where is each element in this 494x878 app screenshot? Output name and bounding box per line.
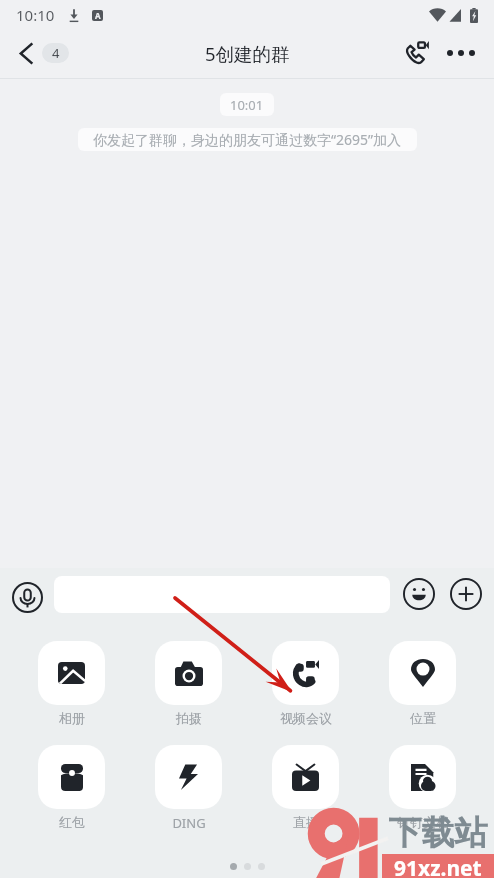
staticText: 拍摄 bbox=[176, 710, 202, 726]
button[interactable]: 钉钉文档 bbox=[389, 745, 456, 830]
button[interactable] bbox=[54, 576, 390, 613]
button[interactable]: Back, 4 unread bbox=[20, 33, 69, 73]
button[interactable]: 直播 bbox=[272, 745, 339, 830]
staticText: DING bbox=[172, 814, 206, 832]
staticText: 4 bbox=[52, 44, 60, 62]
staticText: 下载站 bbox=[382, 812, 494, 854]
button[interactable]: Video call bbox=[401, 38, 431, 68]
staticText: 91xz.net bbox=[394, 854, 482, 878]
button[interactable]: Voice message bbox=[11, 581, 43, 613]
staticText: A bbox=[95, 10, 101, 21]
staticText: 10:01 bbox=[230, 96, 264, 114]
button[interactable]: 位置 bbox=[389, 641, 456, 726]
staticText: 位置 bbox=[410, 710, 436, 726]
staticText: 相册 bbox=[59, 710, 85, 726]
button[interactable]: More actions bbox=[450, 578, 482, 610]
staticText: 直播 bbox=[293, 814, 319, 830]
button[interactable]: Emoji bbox=[403, 578, 435, 610]
staticText: 红包 bbox=[59, 814, 85, 830]
staticText: 你发起了群聊，身边的朋友可通过数字“2695”加入 bbox=[93, 130, 402, 149]
button[interactable]: 视频会议 bbox=[272, 641, 339, 726]
staticText: 10:10 bbox=[16, 5, 55, 25]
button[interactable]: 拍摄 bbox=[155, 641, 222, 726]
staticText: 视频会议 bbox=[280, 710, 332, 726]
button[interactable]: 相册 bbox=[38, 641, 105, 726]
button[interactable]: DING bbox=[155, 745, 222, 832]
button[interactable]: 红包 bbox=[38, 745, 105, 830]
staticText: 钉钉文档 bbox=[397, 814, 449, 830]
staticText: 5创建的群 bbox=[205, 41, 290, 66]
button[interactable]: More options bbox=[446, 38, 476, 68]
